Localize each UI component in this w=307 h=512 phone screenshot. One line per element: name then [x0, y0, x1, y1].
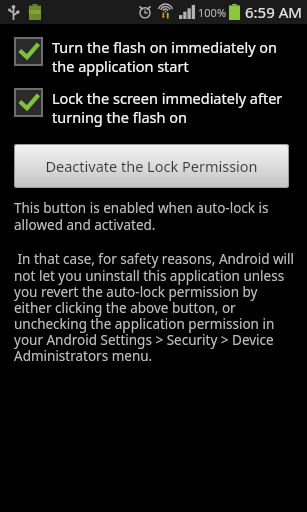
button[interactable]: Lock the screen immediately after turnin…	[0, 88, 307, 127]
staticText: Deactivate the Lock Permission	[45, 156, 258, 176]
button[interactable]: Deactivate the Lock Permission	[14, 144, 289, 188]
staticText: 100%	[28, 9, 41, 16]
staticText: 100%	[198, 5, 227, 20]
staticText: 6:59 AM	[245, 2, 302, 22]
staticText: In that case, for safety reasons, Androi…	[14, 250, 297, 365]
staticText: Turn the flash on immediately on the app…	[52, 37, 297, 76]
staticText: This button is enabled when auto-lock is…	[14, 199, 293, 234]
button[interactable]: Turn the flash on immediately on the app…	[0, 37, 307, 76]
staticText: Lock the screen immediately after turnin…	[52, 88, 297, 127]
